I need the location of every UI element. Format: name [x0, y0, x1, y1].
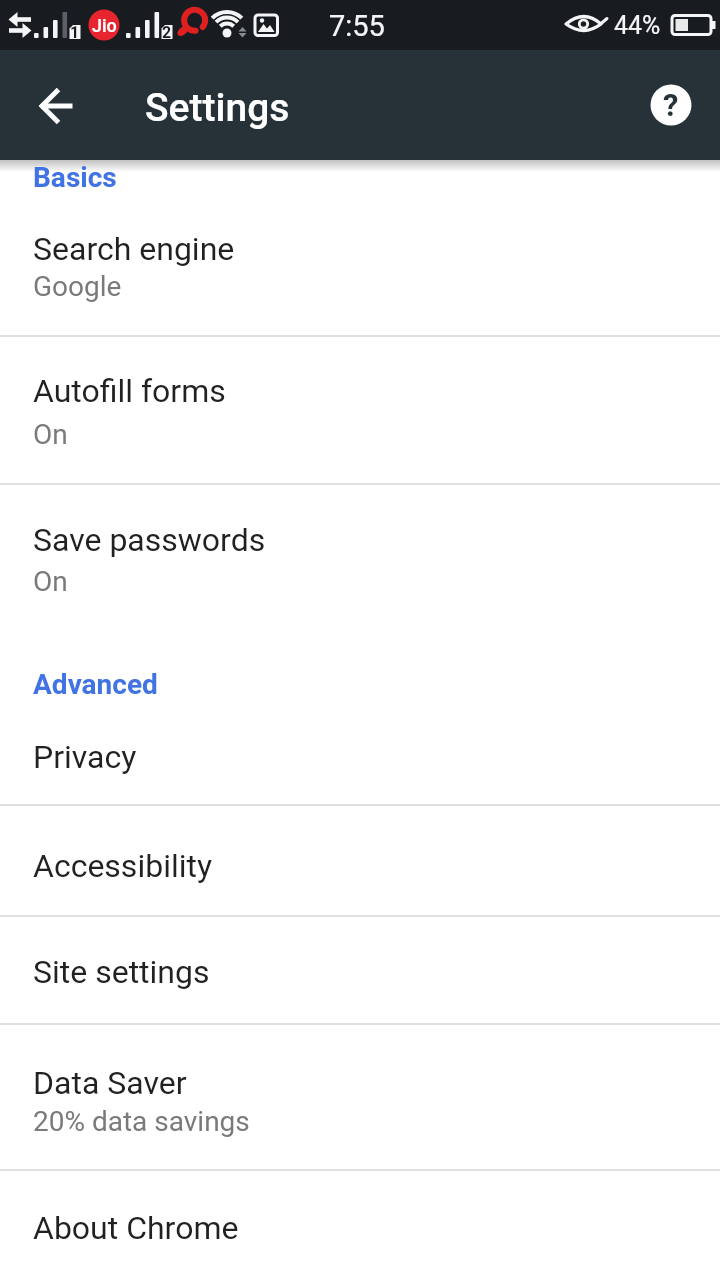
staticText: Search engine: [33, 230, 235, 268]
button[interactable]: Accessibility: [0, 806, 720, 915]
staticText: On: [33, 418, 68, 451]
staticText: Autofill forms: [33, 372, 226, 410]
staticText: 7:55: [329, 9, 385, 43]
staticText: Jio: [92, 15, 117, 36]
button[interactable]: [646, 80, 696, 130]
button[interactable]: [30, 80, 80, 130]
staticText: Privacy: [33, 738, 137, 776]
button[interactable]: Data Saver: [0, 1025, 720, 1169]
staticText: 1: [70, 23, 80, 42]
button[interactable]: Privacy: [0, 708, 720, 804]
staticText: Basics: [33, 161, 117, 194]
button[interactable]: Search engine: [0, 192, 720, 335]
button[interactable]: About Chrome: [0, 1171, 720, 1280]
staticText: On: [33, 565, 68, 598]
button[interactable]: Autofill forms: [0, 337, 720, 483]
button[interactable]: Save passwords: [0, 485, 720, 631]
staticText: Accessibility: [33, 847, 213, 885]
staticText: ?: [663, 87, 679, 123]
staticText: About Chrome: [33, 1209, 239, 1247]
button[interactable]: Site settings: [0, 917, 720, 1023]
staticText: Advanced: [33, 668, 158, 701]
staticText: 20% data savings: [33, 1105, 250, 1138]
staticText: Data Saver: [33, 1064, 187, 1102]
staticText: Google: [33, 270, 122, 303]
staticText: Settings: [145, 85, 290, 131]
staticText: 2: [162, 23, 172, 42]
staticText: 44%: [614, 11, 661, 40]
staticText: Save passwords: [33, 521, 266, 559]
staticText: Site settings: [33, 953, 210, 991]
